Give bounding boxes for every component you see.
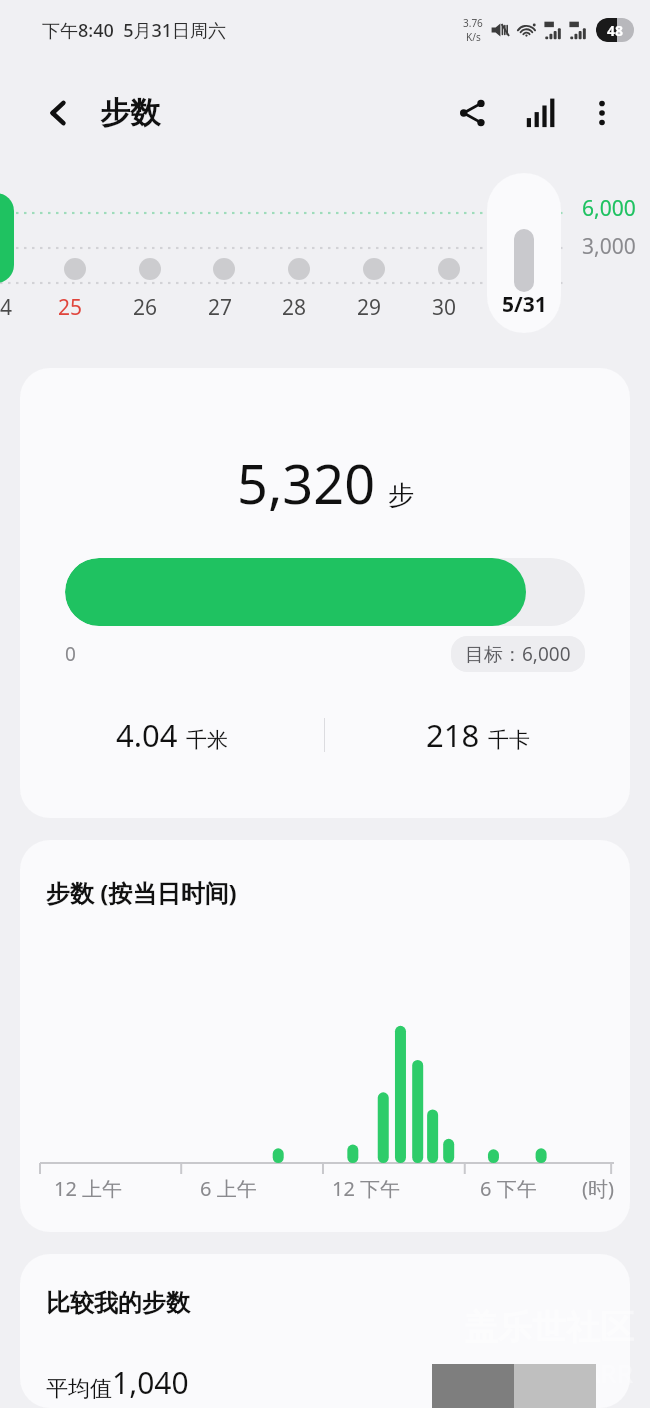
staticText: 26 <box>133 293 158 322</box>
staticText: 30 <box>432 293 457 322</box>
staticText: @GC_DGPJ4ARR <box>437 1355 634 1390</box>
staticText: 3.76 <box>463 16 483 30</box>
staticText: 5/31 <box>502 290 547 319</box>
staticText: 218 <box>426 714 480 756</box>
staticText: 平均值 <box>46 1375 112 1403</box>
staticText: 比较我的步数 <box>46 1288 190 1318</box>
staticText: K/s <box>466 30 481 44</box>
staticText: 29 <box>357 293 382 322</box>
button[interactable]: 5/31 <box>487 173 561 333</box>
staticText: 千卡 <box>488 727 530 753</box>
staticText: 6 上午 <box>200 1175 257 1202</box>
button[interactable]: 5,320 <box>20 368 630 818</box>
staticText: 3,000 <box>582 232 636 261</box>
staticText: 0 <box>65 641 76 667</box>
staticText: 目标：6,000 <box>465 641 571 667</box>
button[interactable]: Chart <box>512 85 568 141</box>
staticText: 千米 <box>186 727 228 753</box>
staticText: 5,320 <box>237 446 376 520</box>
staticText: 25 <box>58 293 83 322</box>
staticText: 步数 <box>100 94 160 132</box>
button[interactable]: Share <box>444 85 500 141</box>
staticText: 6 下午 <box>480 1175 537 1202</box>
staticText: 6,000 <box>582 194 636 223</box>
staticText: (时) <box>582 1175 614 1202</box>
staticText: 4 <box>0 293 13 322</box>
button[interactable]: 步数 (按当日时间) <box>20 840 630 1232</box>
staticText: 4.04 <box>116 714 178 756</box>
staticText: 28 <box>282 293 307 322</box>
button[interactable]: Back <box>30 85 86 141</box>
staticText: 12 下午 <box>332 1175 401 1202</box>
button[interactable]: More options <box>576 87 628 139</box>
staticText: 1,040 <box>112 1362 189 1403</box>
staticText: 步 <box>388 479 414 512</box>
staticText: 下午8:40 5月31日周六 <box>42 18 227 43</box>
staticText: 12 上午 <box>54 1175 123 1202</box>
staticText: 步数 (按当日时间) <box>46 876 237 909</box>
staticText: 27 <box>208 293 233 322</box>
staticText: 48 <box>607 21 624 40</box>
button[interactable]: 比较我的步数 <box>20 1254 630 1408</box>
